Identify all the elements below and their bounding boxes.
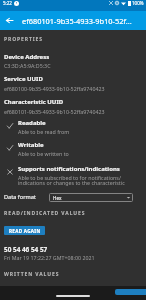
staticText: Able to be subscribed to for notificatio… — [18, 174, 125, 187]
button[interactable]: Supports notifications/indications — [0, 164, 146, 189]
staticText: READ AGAIN — [9, 228, 41, 234]
staticText: WRITTEN VALUES — [4, 271, 60, 278]
staticText: Hex — [53, 195, 62, 201]
staticText: Service UUID — [4, 75, 43, 83]
staticText: ef680101-9b35-4933-9b10-52f... — [22, 16, 132, 26]
button[interactable]: Device Address — [0, 52, 146, 71]
staticText: Characteristic UUID — [4, 98, 64, 106]
staticText: Writable — [18, 141, 44, 149]
button[interactable]: Readable — [0, 118, 146, 137]
staticText: PROPERTIES — [4, 36, 146, 43]
staticText: Able to be written to — [18, 150, 69, 157]
staticText: ef680100-9b35-4933-9b10-52ffa9740423 — [4, 85, 105, 92]
staticText: 5:22 — [3, 0, 12, 6]
button[interactable]: Characteristic UUID — [0, 97, 146, 117]
staticText: Device Address — [4, 53, 50, 61]
button[interactable]: Writable — [0, 140, 146, 159]
staticText: ef680101-9b35-4933-9b10-52ffa9740423 — [4, 108, 105, 115]
staticText: Able to be read from — [18, 128, 70, 135]
staticText: C3:3D:A5:9A:D5:3C — [4, 62, 51, 69]
staticText: 100% — [132, 0, 144, 6]
staticText: READ/INDICATED VALUES — [4, 210, 86, 217]
staticText: Fri Mar 19 17:22:27 GMT+08:00 2021 — [4, 254, 95, 261]
staticText: 50 54 46 54 57 — [4, 245, 48, 254]
button[interactable]: Navigate up — [0, 11, 19, 30]
staticText: Readable — [18, 119, 46, 127]
staticText: Supports notifications/indications — [18, 165, 120, 173]
button[interactable]: Write value — [115, 289, 146, 295]
staticText: Data format — [4, 193, 36, 201]
button[interactable]: Service UUID — [0, 74, 146, 94]
button[interactable]: READ AGAIN — [4, 226, 45, 235]
button[interactable]: Hex — [49, 193, 133, 202]
